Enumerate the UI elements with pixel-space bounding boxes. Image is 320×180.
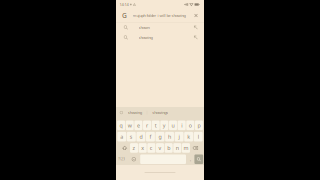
staticText: b (167, 144, 170, 151)
button[interactable]: q (117, 120, 125, 130)
staticText: mujuph folder i will be showing (132, 13, 185, 18)
button[interactable]: n (173, 143, 181, 153)
staticText: t (155, 122, 157, 129)
staticText: w (128, 122, 132, 129)
button[interactable]: g (156, 132, 164, 141)
staticText: d (139, 133, 142, 140)
button[interactable] (194, 154, 203, 164)
button[interactable]: shown (116, 22, 204, 32)
staticText: . (190, 156, 191, 163)
button[interactable]: m (182, 143, 190, 153)
staticText: G (122, 11, 127, 20)
button[interactable]: c (147, 143, 155, 153)
button[interactable]: u (169, 120, 177, 130)
button[interactable]: v (156, 143, 164, 153)
staticText: x (141, 144, 144, 151)
staticText: n (176, 144, 179, 151)
button[interactable] (140, 154, 186, 164)
button[interactable] (191, 143, 200, 153)
button[interactable]: y (160, 120, 168, 130)
staticText: shown (138, 25, 149, 30)
staticText: r (146, 122, 148, 129)
button[interactable]: w (126, 120, 134, 130)
button[interactable]: i (178, 120, 186, 130)
staticText: o (189, 122, 192, 129)
staticText: f (149, 133, 151, 140)
button[interactable] (120, 143, 129, 153)
staticText: c (150, 144, 153, 151)
staticText: showings (152, 110, 168, 115)
staticText: q (120, 122, 123, 129)
button[interactable]: showing (123, 108, 147, 117)
staticText: z (133, 144, 136, 151)
staticText: i (181, 122, 182, 129)
button[interactable]: s (127, 132, 136, 141)
button[interactable] (127, 154, 140, 164)
button[interactable]: a (117, 132, 126, 141)
button[interactable]: h (165, 132, 174, 141)
button[interactable]: e (134, 120, 142, 130)
button[interactable]: t (152, 120, 160, 130)
button[interactable]: f (146, 132, 155, 141)
button[interactable]: p (195, 120, 203, 130)
staticText: p (197, 122, 200, 129)
button[interactable]: l (194, 132, 203, 141)
button[interactable]: x (139, 143, 147, 153)
staticText: l (198, 133, 199, 140)
button[interactable]: o (186, 120, 194, 130)
staticText: j (179, 133, 180, 140)
staticText: m (183, 144, 188, 151)
staticText: e (137, 122, 140, 129)
staticText: u (171, 122, 174, 129)
staticText: y (163, 122, 166, 129)
button[interactable]: showings (147, 108, 173, 117)
staticText: h (168, 133, 171, 140)
staticText: g (158, 133, 161, 140)
staticText: k (187, 133, 190, 140)
staticText: 14:14 (119, 2, 128, 7)
staticText: a (120, 133, 123, 140)
button[interactable]: b (165, 143, 173, 153)
staticText: v (158, 144, 161, 151)
staticText: showing (128, 110, 142, 115)
staticText: s (130, 133, 133, 140)
button[interactable]: j (175, 132, 183, 141)
button[interactable]: z (130, 143, 138, 153)
button[interactable]: d (136, 132, 145, 141)
button[interactable]: r (143, 120, 151, 130)
button[interactable]: ?123 (116, 154, 127, 164)
staticText: showing (138, 35, 152, 40)
button[interactable]: Clear search (192, 9, 200, 21)
button[interactable]: k (184, 132, 193, 141)
button[interactable]: showing (116, 32, 204, 42)
staticText: ?123 (118, 157, 125, 161)
